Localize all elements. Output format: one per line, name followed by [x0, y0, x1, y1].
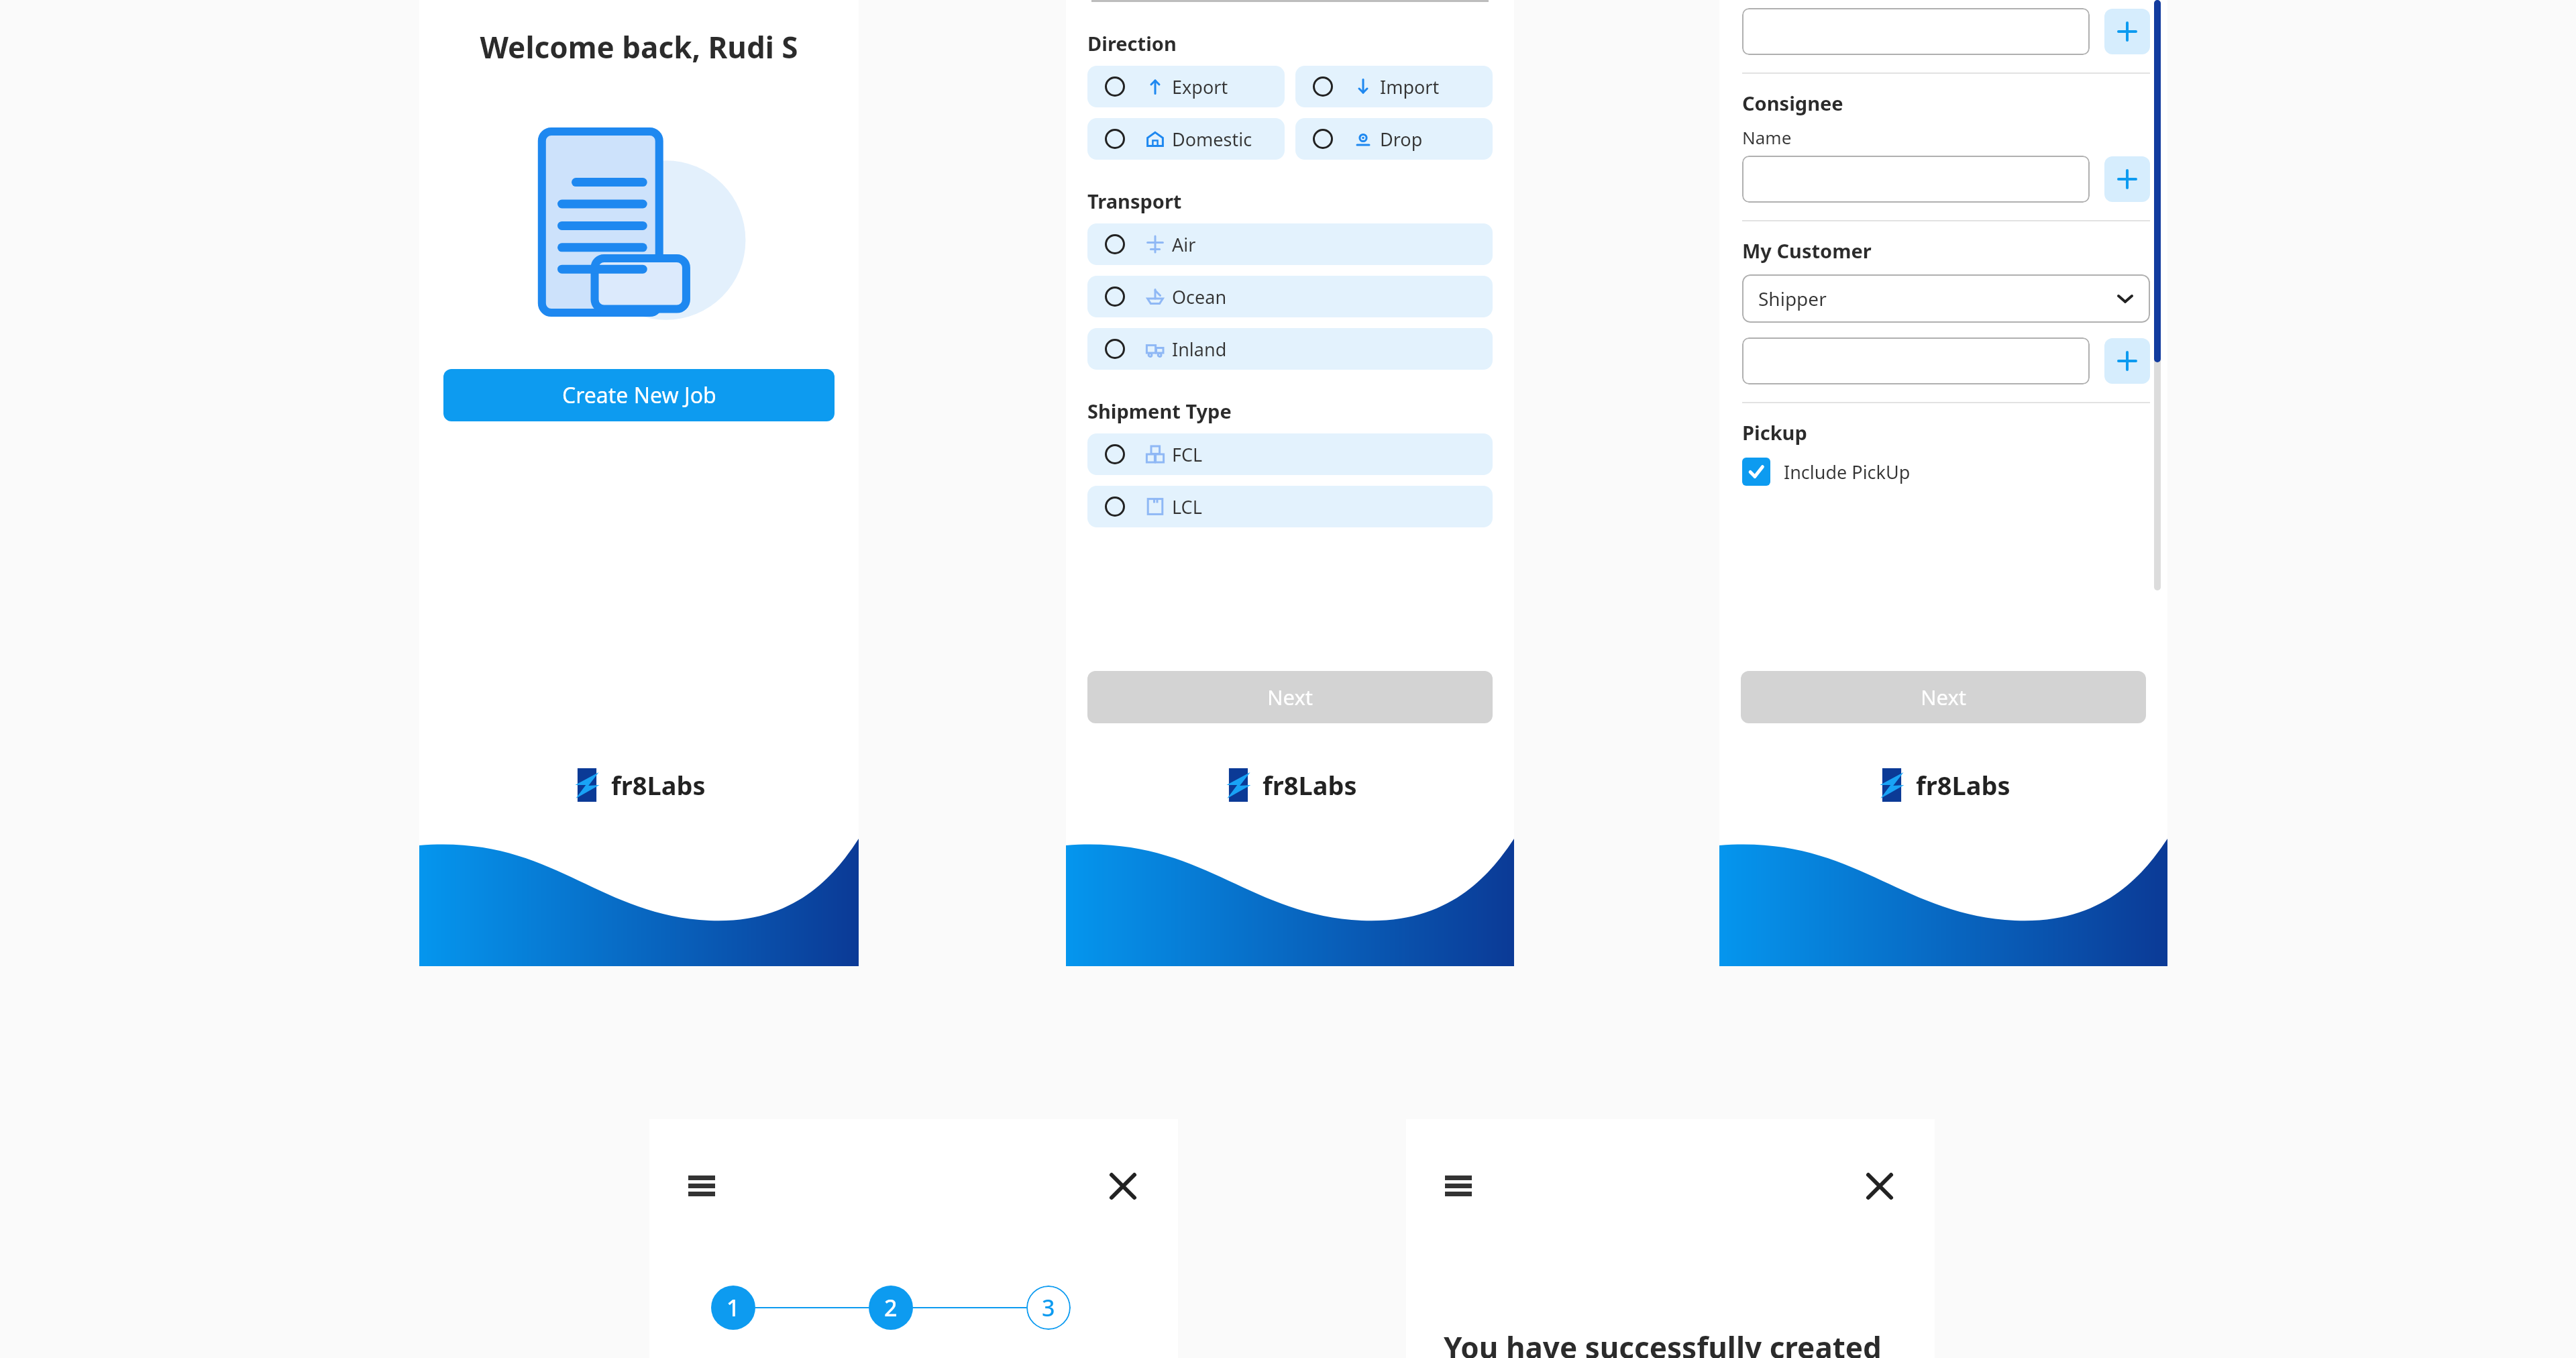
button[interactable]: Close	[1107, 1170, 1139, 1202]
staticText: Next	[1267, 683, 1313, 711]
staticText: Import	[1380, 74, 1440, 99]
staticText: 2	[884, 1292, 898, 1323]
button[interactable]: Next	[1087, 671, 1493, 723]
staticText: Pickup	[1742, 419, 1807, 446]
staticText: Inland	[1172, 337, 1227, 362]
button[interactable]: Menu	[1442, 1170, 1474, 1202]
button[interactable]: Inland	[1087, 328, 1493, 370]
staticText: FCL	[1172, 442, 1203, 467]
staticText: Create New Job	[562, 380, 716, 410]
button[interactable]: Create New Job	[443, 369, 835, 421]
button[interactable]: Shipper	[1742, 274, 2150, 323]
button[interactable]: Include PickUp	[1742, 458, 1911, 486]
button[interactable]: Export	[1087, 66, 1285, 107]
button[interactable]: Close	[1864, 1170, 1896, 1202]
button[interactable]: Air	[1087, 223, 1493, 265]
staticText: Export	[1172, 74, 1228, 99]
button[interactable]	[1742, 337, 2090, 384]
staticText: Welcome back, Rudi S	[419, 27, 859, 67]
staticText: fr8Labs	[1263, 768, 1357, 802]
staticText: Direction	[1087, 30, 1177, 56]
button[interactable]: FCL	[1087, 433, 1493, 475]
staticText: fr8Labs	[1916, 768, 2010, 802]
staticText: You have successfully created	[1444, 1327, 1882, 1358]
staticText: fr8Labs	[611, 768, 706, 802]
button[interactable]: Menu	[686, 1170, 718, 1202]
button[interactable]: Add	[2104, 9, 2150, 54]
button[interactable]: Add	[2104, 156, 2150, 202]
button[interactable]	[1742, 8, 2090, 55]
staticText: Next	[1921, 683, 1967, 711]
staticText: Consignee	[1742, 90, 1843, 116]
staticText: Shipment Type	[1087, 398, 1232, 424]
button[interactable]: Drop	[1295, 118, 1493, 160]
staticText: Name	[1742, 125, 1792, 149]
button[interactable]: Next	[1741, 671, 2146, 723]
staticText: 3	[1042, 1292, 1055, 1323]
staticText: Ocean	[1172, 284, 1227, 309]
staticText: Shipper	[1758, 286, 1827, 311]
staticText: My Customer	[1742, 238, 1872, 264]
button[interactable]: Domestic	[1087, 118, 1285, 160]
staticText: Domestic	[1172, 127, 1252, 152]
button[interactable]: 3	[1026, 1286, 1071, 1330]
staticText: Include PickUp	[1784, 460, 1911, 484]
button[interactable]: 1	[711, 1286, 755, 1330]
staticText: LCL	[1172, 494, 1202, 519]
button[interactable]	[1742, 156, 2090, 203]
button[interactable]: Import	[1295, 66, 1493, 107]
button[interactable]: 2	[869, 1286, 913, 1330]
staticText: 1	[727, 1292, 740, 1323]
button[interactable]: Add	[2104, 338, 2150, 384]
button[interactable]: Ocean	[1087, 276, 1493, 317]
staticText: Transport	[1087, 188, 1182, 214]
button[interactable]: LCL	[1087, 486, 1493, 527]
staticText: Air	[1172, 232, 1196, 257]
staticText: Drop	[1380, 127, 1423, 152]
